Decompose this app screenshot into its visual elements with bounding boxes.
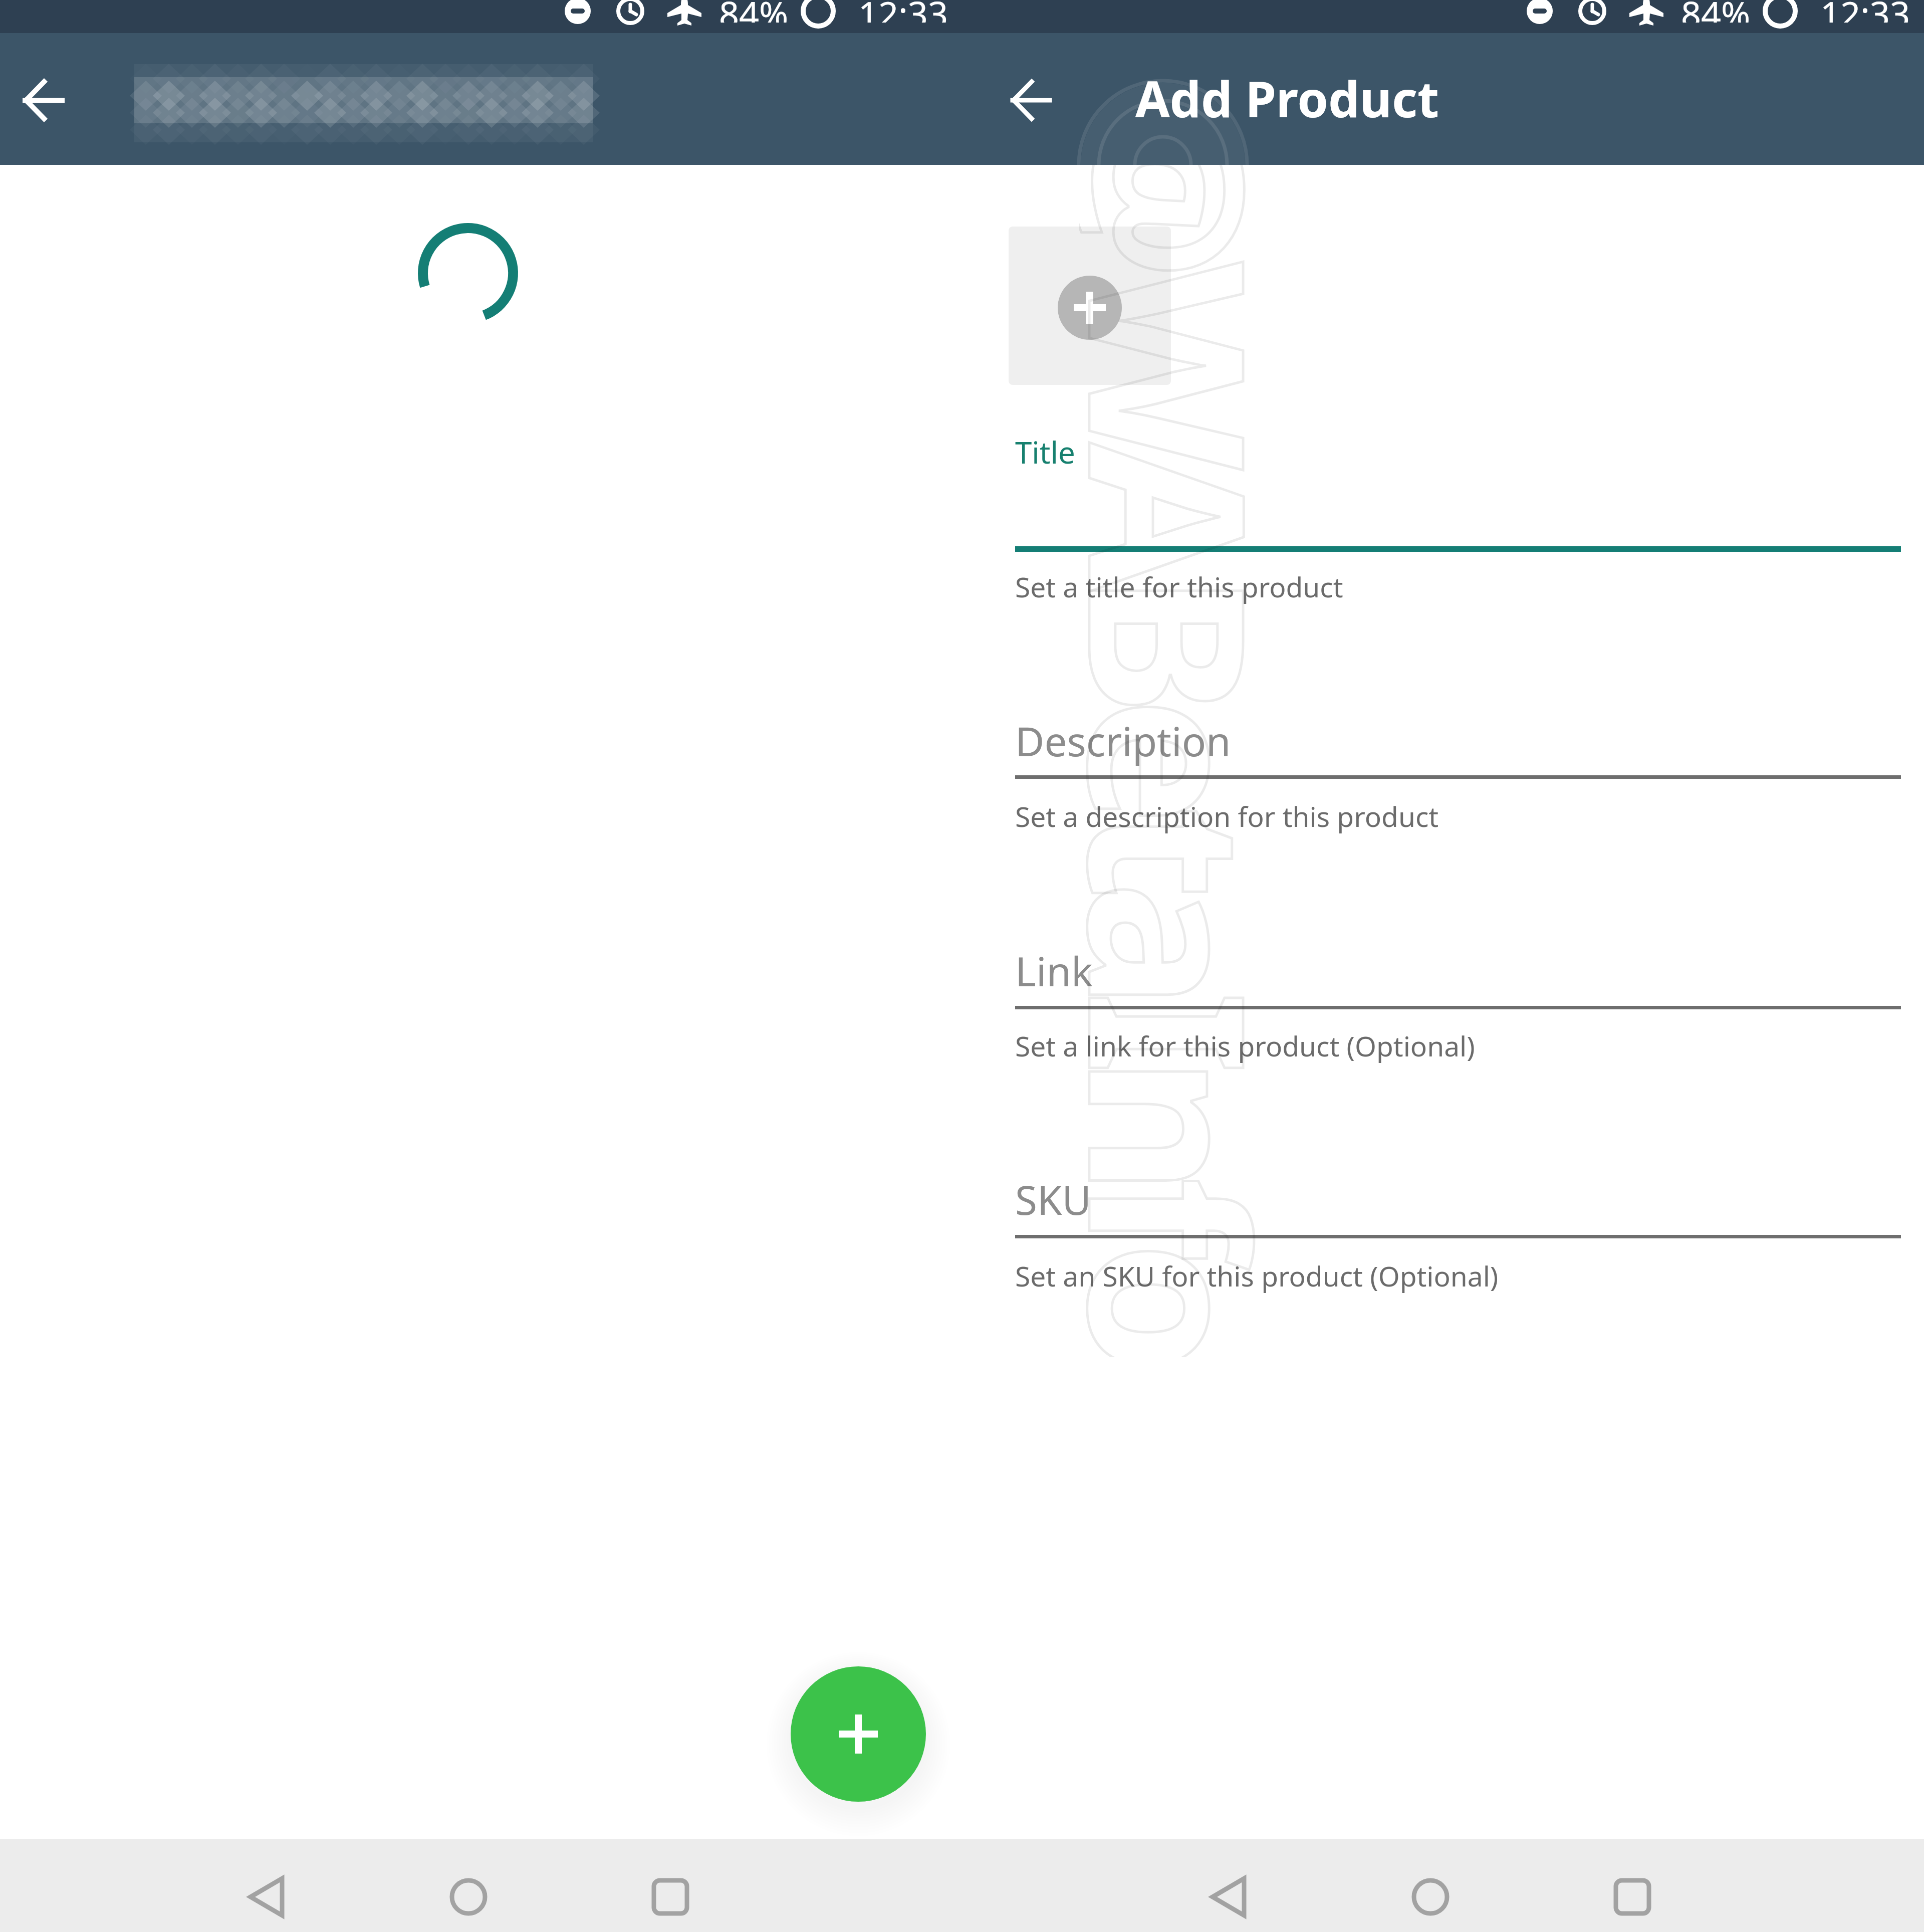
staticText: Set a description for this product xyxy=(1015,797,1439,835)
staticText: Title xyxy=(1015,432,1075,473)
staticText: Set an SKU for this product (Optional) xyxy=(1015,1257,1499,1295)
button[interactable]: Add product xyxy=(791,1666,926,1802)
button[interactable]: Home xyxy=(1385,1863,1476,1931)
button[interactable]: Description xyxy=(1015,713,1901,779)
button[interactable]: Recent apps xyxy=(1587,1863,1677,1931)
button[interactable]: Back xyxy=(222,1863,313,1931)
button[interactable]: Back xyxy=(991,60,1071,140)
button[interactable]: Add photo xyxy=(1009,227,1171,385)
staticText: SKU xyxy=(1015,1172,1091,1226)
staticText: Add Product xyxy=(1135,64,1439,132)
staticText: 12:33 xyxy=(858,0,948,23)
staticText: Set a title for this product xyxy=(1015,568,1343,605)
staticText: Link xyxy=(1015,943,1093,998)
staticText: 12:33 xyxy=(1820,0,1910,23)
staticText: Set a link for this product (Optional) xyxy=(1015,1027,1475,1064)
staticText: 84% xyxy=(1681,0,1751,23)
button[interactable]: Back xyxy=(4,60,84,140)
button[interactable]: Link xyxy=(1015,943,1901,1009)
button[interactable]: Home xyxy=(423,1863,514,1931)
staticText: @WABetaInfo xyxy=(1079,165,1320,1357)
staticText: Description xyxy=(1015,713,1231,768)
staticText: 84% xyxy=(719,0,789,23)
button[interactable]: SKU xyxy=(1015,1172,1901,1238)
button[interactable]: Recent apps xyxy=(625,1863,715,1931)
button[interactable]: Title xyxy=(1015,432,1901,552)
button[interactable]: Back xyxy=(1184,1863,1275,1931)
